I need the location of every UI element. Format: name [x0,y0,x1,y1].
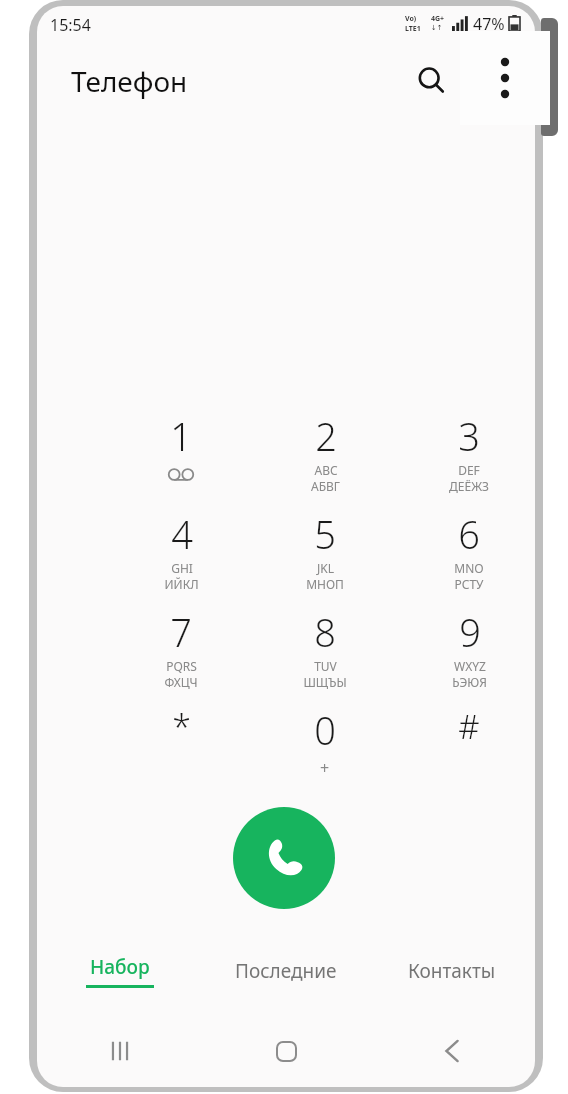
button[interactable]: Back [369,1022,535,1080]
staticText: 4G+ [431,14,445,24]
staticText: WXYZ [454,658,486,674]
staticText: Vo) [405,14,417,24]
staticText: 8 [314,606,336,658]
button[interactable]: 9 [429,606,509,702]
staticText: 5 [314,508,336,560]
staticText: 7 [170,606,192,658]
staticText: АБВГ [311,478,340,494]
staticText: 15:54 [50,14,91,36]
staticText: LTE1 [405,24,421,34]
staticText: ФХЦЧ [164,674,198,690]
staticText: DEF [458,462,480,478]
staticText: * [172,704,191,750]
staticText: 47% [473,13,505,35]
staticText: 6 [458,508,480,560]
button[interactable]: 7 [141,606,221,702]
staticText: ABC [314,462,338,478]
staticText: ЬЭЮЯ [452,674,487,690]
staticText: 3 [458,410,480,462]
staticText: Телефон [71,62,188,100]
button[interactable]: # [429,704,509,800]
staticText: ↓↑ [431,24,443,32]
button[interactable]: 8 [285,606,365,702]
button[interactable]: 2 [285,410,365,506]
staticText: Набор [90,954,150,980]
staticText: + [320,757,330,779]
button[interactable]: Последние [203,944,369,998]
staticText: ДЕЁЖЗ [449,478,489,494]
button[interactable]: Home [203,1022,369,1080]
staticText: TUV [314,658,337,674]
staticText: GHI [171,560,193,576]
button[interactable]: Контакты [369,944,535,998]
staticText: 1 [170,410,192,462]
staticText: МНОП [306,576,344,592]
staticText: Последние [235,958,337,984]
button[interactable]: * [141,704,221,800]
button[interactable]: Search [405,54,457,106]
staticText: 9 [459,606,481,658]
staticText: 0 [314,704,336,756]
button[interactable]: Call [233,807,335,909]
staticText: PQRS [166,658,197,674]
button[interactable]: 0 [285,704,365,800]
staticText: Контакты [408,958,496,984]
staticText: ШЩЪЫ [303,674,347,690]
button[interactable]: Набор [37,944,203,998]
button[interactable]: More options [460,31,550,125]
button[interactable]: 6 [429,508,509,604]
button[interactable]: 3 [429,410,509,506]
staticText: ИЙКЛ [164,576,199,592]
staticText: 2 [315,410,337,462]
staticText: JKL [317,560,334,576]
button[interactable]: Recents [37,1022,203,1080]
staticText: 4 [171,508,193,560]
button[interactable]: 5 [285,508,365,604]
staticText: MNO [454,560,484,576]
staticText: # [458,704,480,749]
button[interactable]: 4 [141,508,221,604]
button[interactable]: 1 [141,410,221,506]
staticText: РСТУ [454,576,484,592]
